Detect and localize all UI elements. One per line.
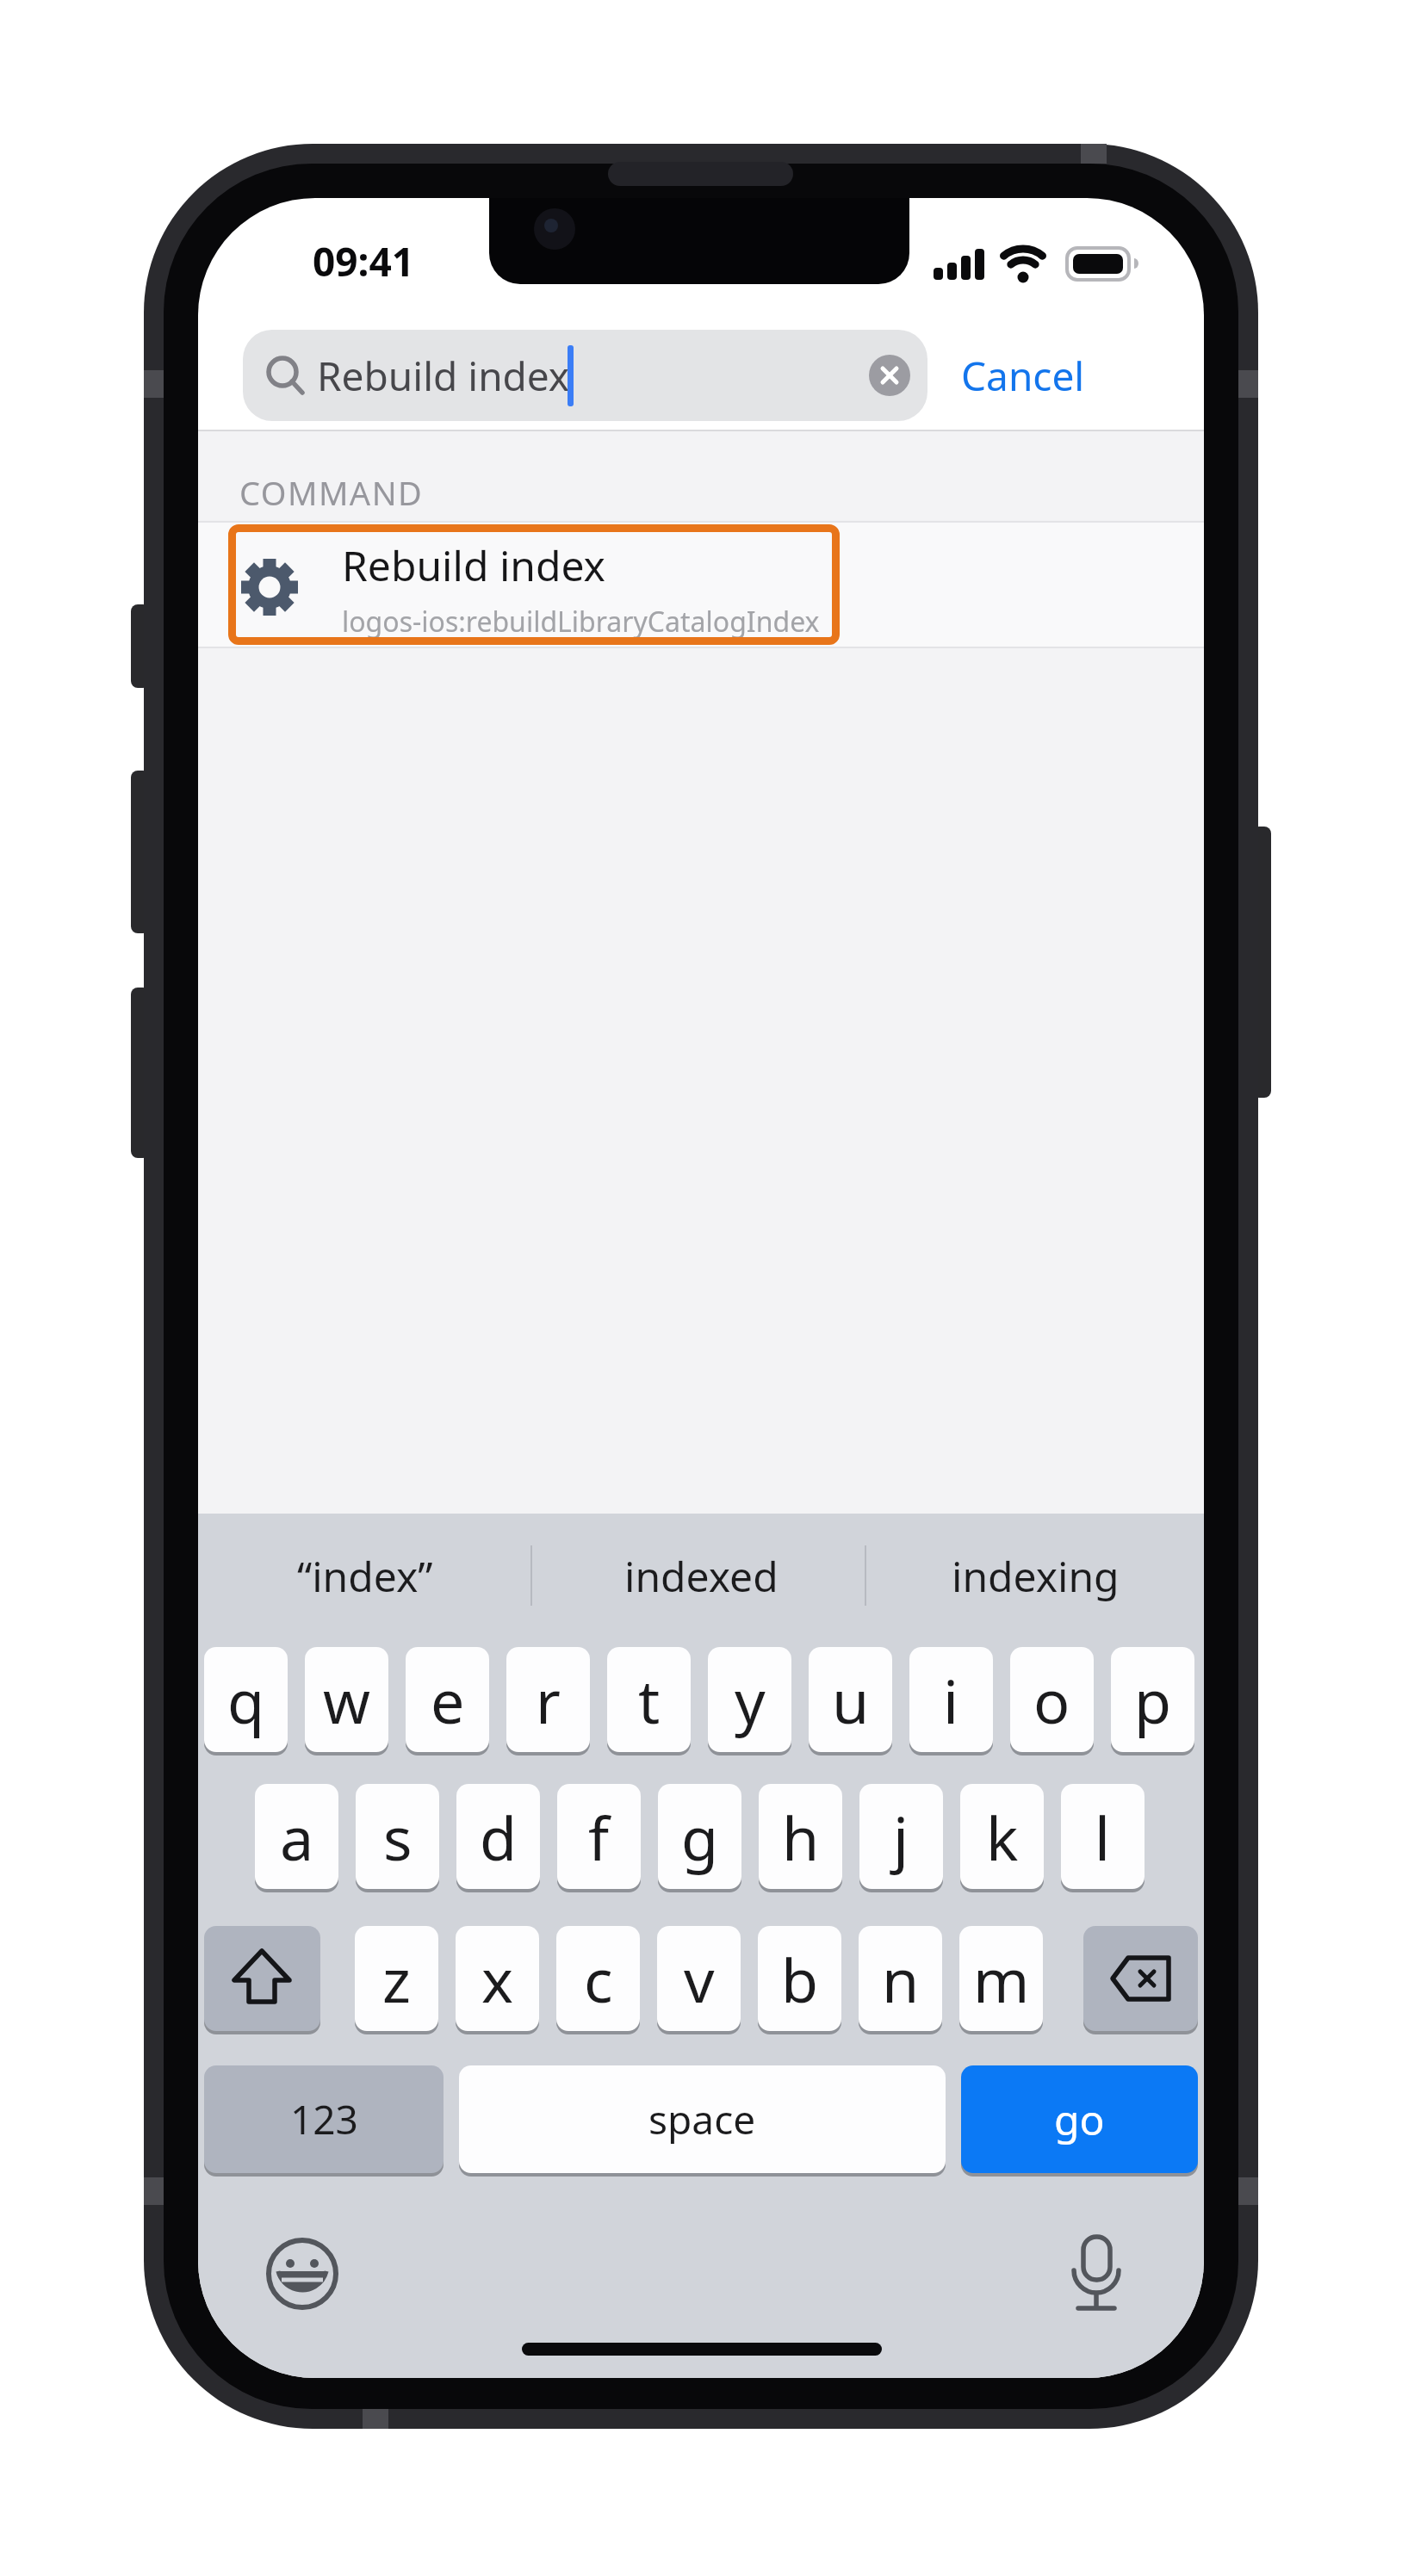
staticText: n <box>882 1938 920 2020</box>
button[interactable]: o <box>1010 1647 1094 1752</box>
staticText: k <box>986 1796 1019 1878</box>
staticText: Cancel <box>961 349 1085 403</box>
button[interactable]: Cancel <box>961 330 1168 421</box>
button[interactable]: h <box>759 1784 842 1889</box>
button[interactable]: i <box>909 1647 993 1752</box>
button[interactable]: go <box>961 2065 1198 2173</box>
button[interactable]: u <box>809 1647 892 1752</box>
staticText: c <box>584 1938 613 2020</box>
button[interactable]: w <box>305 1647 388 1752</box>
button[interactable]: x <box>456 1926 539 2031</box>
button[interactable]: 123 <box>204 2065 444 2173</box>
button[interactable]: “index” <box>210 1541 520 1610</box>
button[interactable] <box>1083 1926 1198 2031</box>
staticText: e <box>431 1659 465 1741</box>
staticText: v <box>684 1938 715 2020</box>
button[interactable]: f <box>557 1784 641 1889</box>
staticText: w <box>323 1659 371 1741</box>
staticText: h <box>782 1796 820 1878</box>
staticText: s <box>383 1796 413 1878</box>
staticText: l <box>1095 1796 1111 1878</box>
button[interactable]: e <box>406 1647 489 1752</box>
button[interactable]: k <box>960 1784 1044 1889</box>
staticText: Rebuild index <box>342 537 605 589</box>
button[interactable]: indexing <box>880 1541 1190 1610</box>
staticText: i <box>943 1659 959 1741</box>
staticText: t <box>638 1659 661 1741</box>
button[interactable]: d <box>456 1784 540 1889</box>
staticText: p <box>1134 1659 1172 1741</box>
staticText: j <box>893 1796 909 1878</box>
button[interactable]: indexed <box>546 1541 856 1610</box>
button[interactable] <box>258 2230 346 2318</box>
staticText: logos-ios:rebuildLibraryCatalogIndex <box>342 603 820 641</box>
button[interactable]: l <box>1061 1784 1145 1889</box>
button[interactable]: z <box>355 1926 438 2031</box>
staticText: z <box>382 1938 411 2020</box>
staticText: go <box>1054 2091 1105 2147</box>
button[interactable]: space <box>459 2065 946 2173</box>
staticText: 123 <box>290 2092 358 2146</box>
button[interactable] <box>1052 2230 1140 2318</box>
button[interactable]: a <box>255 1784 338 1889</box>
button[interactable] <box>228 524 840 645</box>
staticText: COMMAND <box>239 470 424 511</box>
staticText: indexed <box>624 1548 779 1604</box>
staticText: o <box>1033 1659 1070 1741</box>
staticText: space <box>648 2092 756 2146</box>
staticText: r <box>536 1659 561 1741</box>
staticText: d <box>480 1796 518 1878</box>
button[interactable]: s <box>356 1784 439 1889</box>
button[interactable] <box>867 353 912 398</box>
staticText: y <box>735 1659 766 1741</box>
staticText: Rebuild index <box>317 349 570 403</box>
button[interactable] <box>204 1926 320 2031</box>
button[interactable]: t <box>607 1647 691 1752</box>
button[interactable]: g <box>658 1784 741 1889</box>
staticText: m <box>973 1938 1030 2020</box>
button[interactable]: q <box>204 1647 288 1752</box>
staticText: u <box>832 1659 870 1741</box>
staticText: g <box>681 1796 719 1878</box>
staticText: q <box>227 1659 265 1741</box>
button[interactable]: n <box>859 1926 942 2031</box>
staticText: f <box>588 1796 610 1878</box>
staticText: a <box>280 1796 314 1878</box>
button[interactable]: r <box>506 1647 590 1752</box>
staticText: x <box>481 1938 514 2020</box>
button[interactable]: c <box>556 1926 640 2031</box>
staticText: “index” <box>297 1548 433 1604</box>
button[interactable]: y <box>708 1647 791 1752</box>
staticText: 09:41 <box>313 234 415 286</box>
button[interactable]: j <box>859 1784 943 1889</box>
button[interactable] <box>198 523 1204 648</box>
button[interactable]: b <box>758 1926 841 2031</box>
staticText: b <box>781 1938 819 2020</box>
button[interactable]: m <box>959 1926 1043 2031</box>
staticText: indexing <box>952 1548 1120 1604</box>
button[interactable]: p <box>1111 1647 1194 1752</box>
button[interactable]: v <box>657 1926 741 2031</box>
